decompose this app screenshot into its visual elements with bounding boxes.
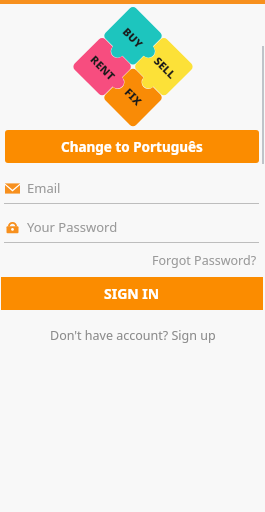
staticText: BUY <box>119 24 147 51</box>
other: Buy Sell Rent Fix logo <box>74 8 192 126</box>
staticText: SIGN IN <box>104 284 160 303</box>
button[interactable]: Don't have account? Sign up <box>40 323 226 348</box>
other: Email <box>5 181 20 196</box>
staticText: Your Password <box>27 218 118 236</box>
staticText: FIX <box>121 84 145 108</box>
button[interactable]: Change to Português <box>5 130 259 163</box>
other: Password <box>5 220 20 235</box>
staticText: RENT <box>87 52 119 83</box>
button[interactable]: Email <box>0 179 265 204</box>
staticText: Forgot Password? <box>152 252 257 269</box>
staticText: Don't have account? Sign up <box>50 327 216 344</box>
button[interactable]: Password <box>0 218 265 243</box>
staticText: Email <box>27 179 61 197</box>
staticText: SELL <box>150 53 179 82</box>
staticText: Change to Português <box>61 138 203 156</box>
button[interactable]: Forgot Password? <box>144 249 265 272</box>
button[interactable]: SIGN IN <box>1 277 263 310</box>
